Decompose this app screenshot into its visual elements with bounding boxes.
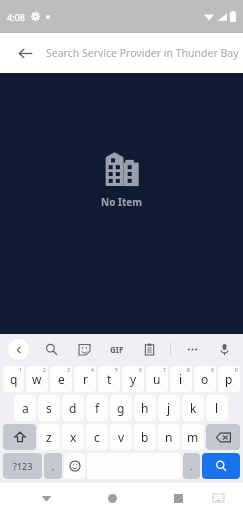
button[interactable]: Home: [99, 485, 125, 511]
staticText: w: [32, 371, 42, 387]
staticText: g: [117, 400, 125, 416]
button[interactable]: l: [206, 395, 228, 421]
staticText: 9: [211, 367, 214, 374]
button[interactable]: Period: [183, 453, 200, 479]
staticText: t: [107, 371, 112, 387]
button[interactable]: More options: [181, 338, 203, 360]
button[interactable]: Clipboard: [138, 338, 160, 360]
button[interactable]: ?123: [3, 453, 42, 479]
staticText: f: [95, 400, 100, 416]
staticText: q: [10, 371, 18, 387]
staticText: 8: [187, 367, 190, 374]
button[interactable]: a: [14, 395, 36, 421]
staticText: j: [167, 400, 171, 416]
staticText: ?123: [13, 460, 33, 472]
staticText: Search Service Provider in Thunder Bay: [46, 46, 239, 60]
button[interactable]: t: [98, 366, 120, 392]
staticText: p: [225, 371, 233, 387]
button[interactable]: Recent apps: [165, 485, 191, 511]
button[interactable]: k: [182, 395, 204, 421]
staticText: d: [69, 400, 77, 416]
staticText: 4: [91, 367, 94, 374]
button[interactable]: b: [134, 424, 156, 450]
staticText: n: [165, 429, 173, 445]
staticText: l: [215, 400, 219, 416]
staticText: .: [190, 460, 193, 472]
staticText: GIF: [110, 344, 124, 355]
button[interactable]: g: [110, 395, 132, 421]
button[interactable]: Back: [33, 485, 59, 511]
button[interactable]: d: [62, 395, 84, 421]
button[interactable]: h: [134, 395, 156, 421]
staticText: h: [141, 400, 149, 416]
staticText: v: [118, 429, 125, 445]
button[interactable]: c: [86, 424, 108, 450]
staticText: k: [190, 400, 197, 416]
button[interactable]: m: [182, 424, 204, 450]
staticText: 7: [163, 367, 166, 374]
button[interactable]: Shift: [3, 424, 36, 450]
button[interactable]: Emoji: [64, 453, 85, 479]
button[interactable]: Expand toolbar: [8, 339, 29, 360]
button[interactable]: Search: [202, 453, 240, 479]
staticText: 4:08: [7, 11, 25, 23]
staticText: 5: [115, 367, 118, 374]
button[interactable]: Backspace: [206, 424, 240, 450]
staticText: o: [201, 371, 209, 387]
button[interactable]: Search Service Provider in Thunder Bay: [46, 33, 243, 73]
staticText: s: [46, 400, 52, 416]
button[interactable]: v: [110, 424, 132, 450]
button[interactable]: i: [170, 366, 192, 392]
button[interactable]: w: [26, 366, 48, 392]
button[interactable]: e: [50, 366, 72, 392]
button[interactable]: Switch keyboard: [207, 487, 229, 509]
staticText: x: [70, 429, 77, 445]
staticText: 0: [235, 367, 238, 374]
button[interactable]: q: [3, 366, 24, 392]
staticText: u: [153, 371, 161, 387]
button[interactable]: z: [38, 424, 60, 450]
staticText: No Item: [101, 195, 142, 209]
button[interactable]: y: [122, 366, 144, 392]
staticText: e: [58, 371, 65, 387]
staticText: 1: [19, 367, 22, 374]
button[interactable]: n: [158, 424, 180, 450]
staticText: 6: [139, 367, 142, 374]
button[interactable]: u: [146, 366, 168, 392]
staticText: r: [83, 371, 88, 387]
button[interactable]: x: [62, 424, 84, 450]
staticText: y: [130, 371, 137, 387]
staticText: m: [187, 429, 199, 445]
button[interactable]: GIF: [106, 338, 128, 360]
button[interactable]: f: [86, 395, 108, 421]
button[interactable]: r: [74, 366, 96, 392]
button[interactable]: Stickers: [73, 338, 95, 360]
staticText: z: [46, 429, 52, 445]
staticText: ,: [52, 460, 55, 472]
button[interactable]: Voice input: [213, 338, 235, 360]
button[interactable]: Back: [10, 38, 40, 68]
staticText: c: [94, 429, 100, 445]
staticText: a: [22, 400, 29, 416]
button[interactable]: Search: [40, 338, 62, 360]
staticText: 3: [67, 367, 70, 374]
staticText: i: [179, 371, 183, 387]
staticText: b: [141, 429, 149, 445]
button[interactable]: j: [158, 395, 180, 421]
button[interactable]: p: [218, 366, 240, 392]
button[interactable]: s: [38, 395, 60, 421]
button[interactable]: o: [194, 366, 216, 392]
button[interactable]: Comma: [44, 453, 62, 479]
staticText: 2: [43, 367, 46, 374]
